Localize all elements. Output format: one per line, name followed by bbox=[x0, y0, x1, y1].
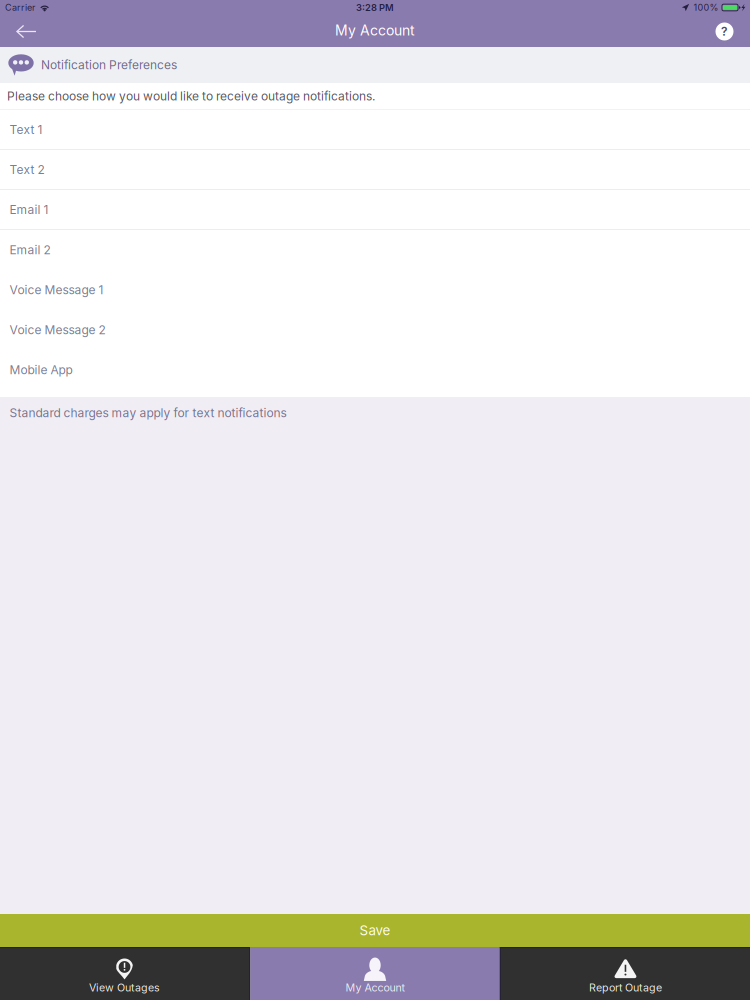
staticText: Email 2 bbox=[9, 243, 50, 257]
staticText: ? bbox=[721, 24, 728, 39]
button[interactable]: Voice Message 2 bbox=[0, 310, 750, 350]
staticText: 100% bbox=[693, 2, 718, 13]
staticText: Report Outage bbox=[589, 981, 662, 994]
button[interactable]: Save bbox=[0, 914, 750, 947]
button[interactable]: Voice Message 1 bbox=[0, 270, 750, 310]
staticText: Voice Message 2 bbox=[9, 323, 105, 337]
button[interactable]: Mobile App bbox=[0, 350, 750, 390]
staticText: Email 1 bbox=[9, 202, 48, 217]
button[interactable]: View Outages bbox=[0, 947, 249, 1000]
button[interactable]: Email 2 bbox=[0, 230, 750, 270]
button[interactable]: Text 2 bbox=[0, 150, 750, 190]
staticText: My Account bbox=[345, 981, 404, 994]
staticText: Carrier bbox=[5, 2, 35, 13]
staticText: Please choose how you would like to rece… bbox=[7, 89, 375, 103]
button[interactable]: Email 1 bbox=[0, 190, 750, 230]
staticText: Text 1 bbox=[9, 122, 42, 137]
button[interactable]: Help bbox=[699, 20, 750, 43]
staticText: Text 2 bbox=[9, 162, 44, 177]
button[interactable]: Report Outage bbox=[501, 947, 750, 1000]
staticText: View Outages bbox=[89, 981, 160, 994]
button[interactable]: Back bbox=[0, 20, 52, 43]
staticText: 3:28 PM bbox=[356, 2, 394, 13]
staticText: Mobile App bbox=[9, 363, 72, 377]
staticText: Save bbox=[359, 922, 390, 938]
staticText: Voice Message 1 bbox=[9, 283, 103, 297]
button[interactable]: Text 1 bbox=[0, 110, 750, 150]
staticText: Notification Preferences bbox=[41, 58, 177, 72]
staticText: My Account bbox=[335, 22, 415, 39]
staticText: Standard charges may apply for text noti… bbox=[9, 406, 286, 420]
button[interactable]: My Account bbox=[250, 947, 500, 1000]
